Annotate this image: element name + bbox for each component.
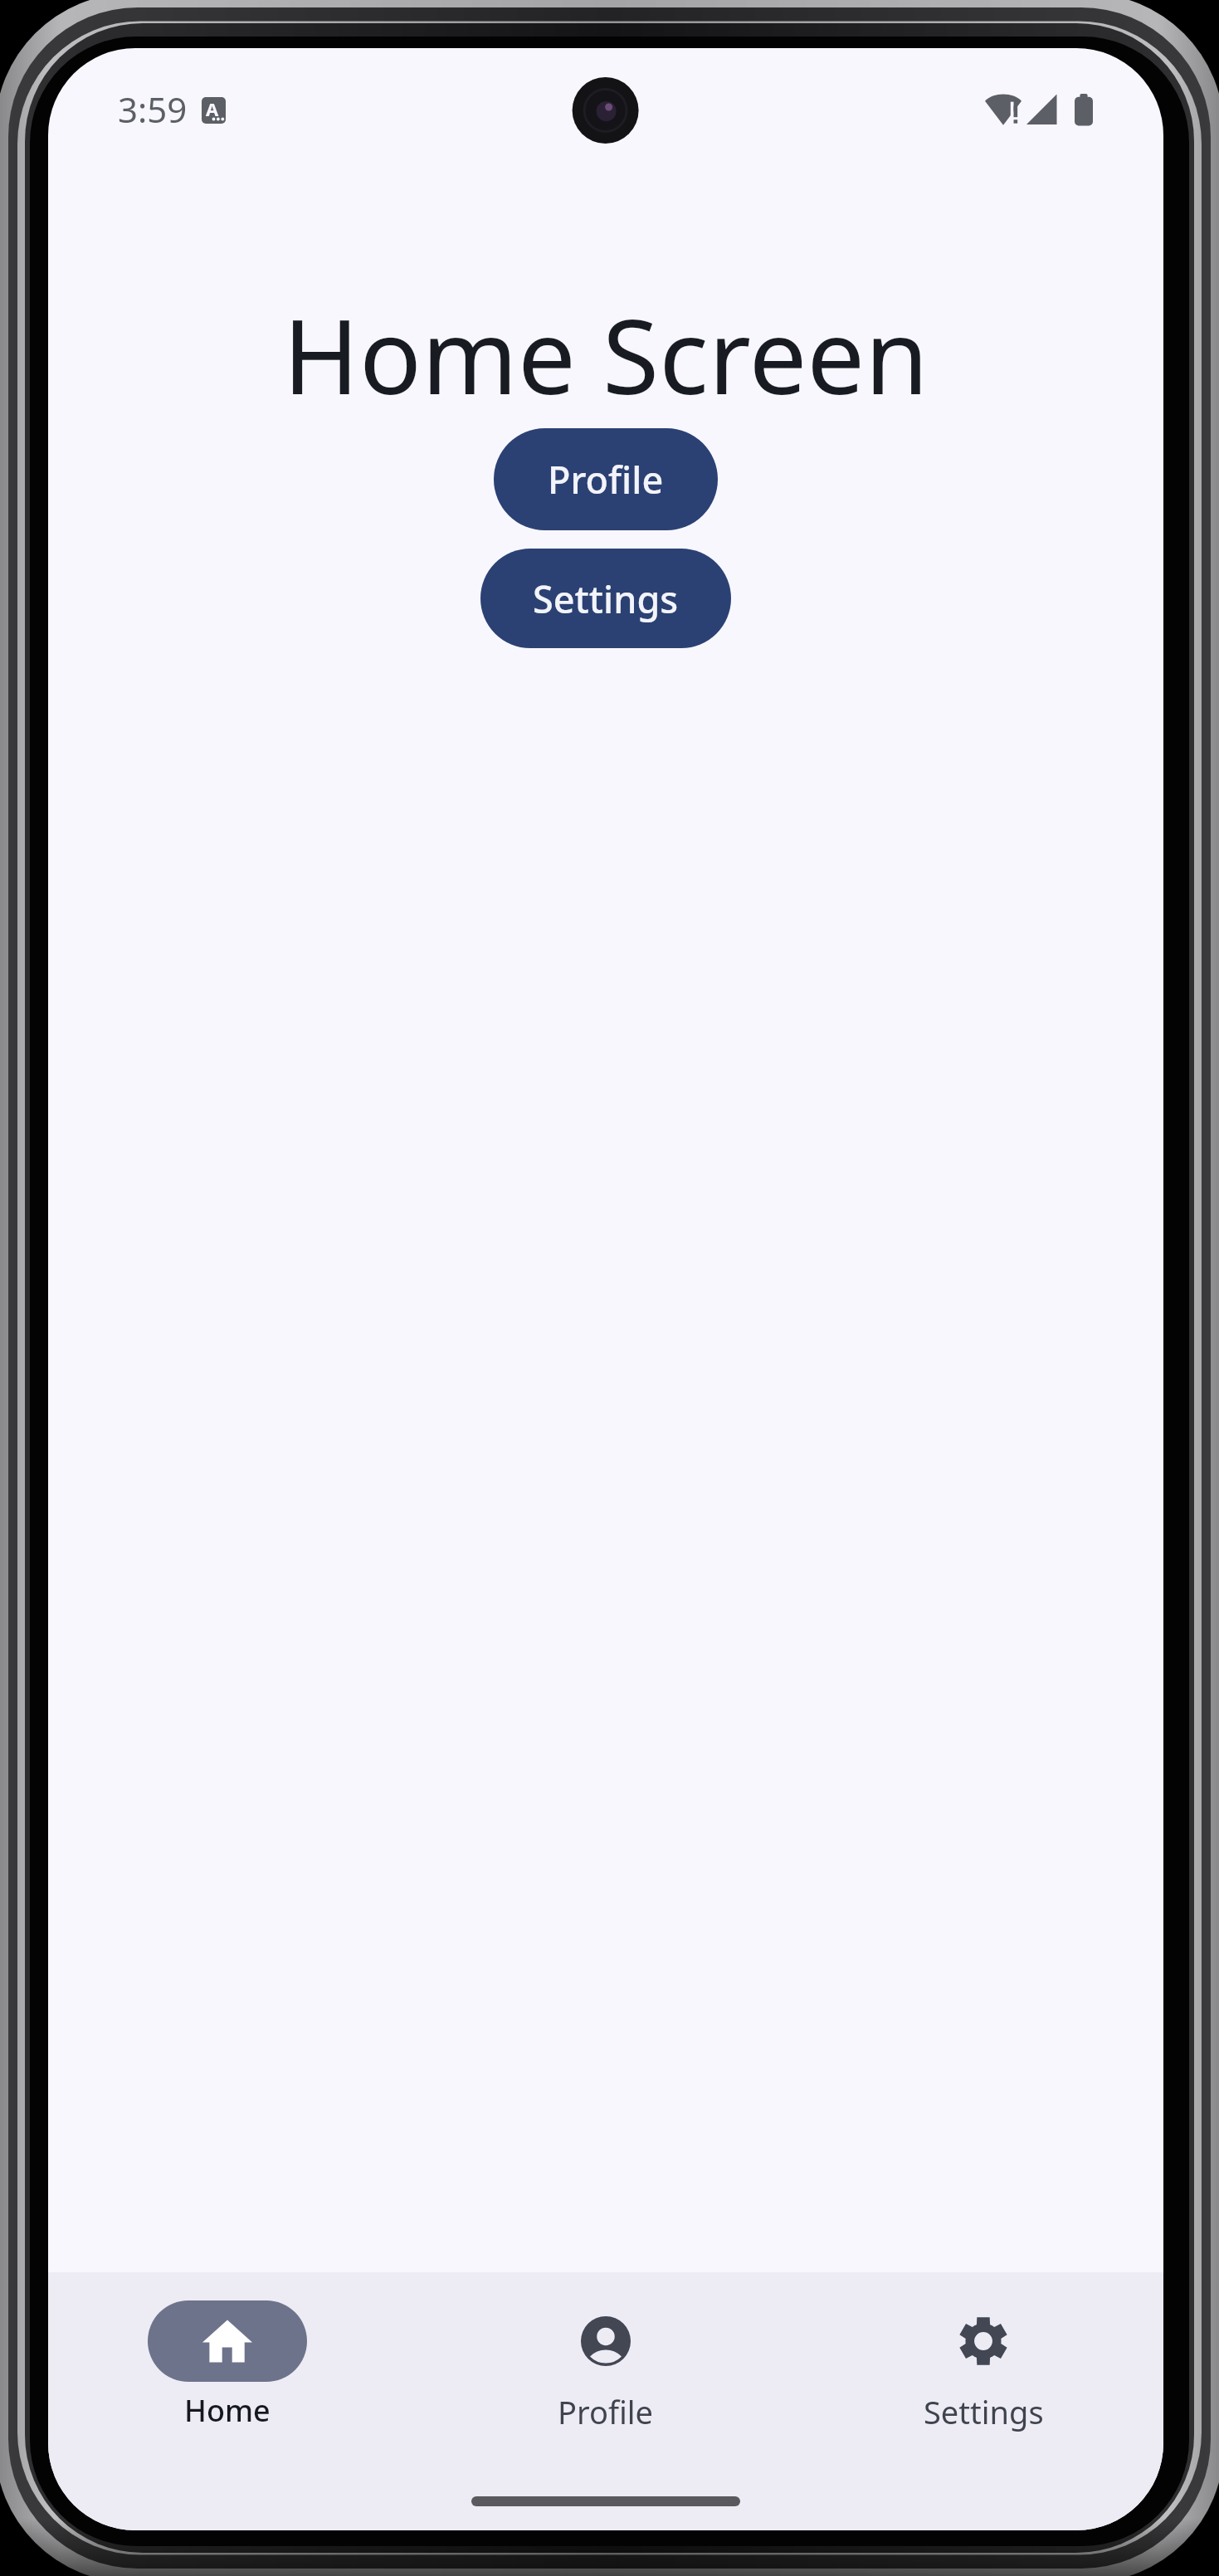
button[interactable]: Profile (481, 2272, 730, 2455)
staticText: Profile (548, 454, 664, 505)
staticText: Home (184, 2390, 271, 2431)
staticText: Settings (924, 2390, 1044, 2433)
staticText: Profile (558, 2390, 654, 2433)
staticText: A (206, 97, 219, 121)
button[interactable]: Settings (859, 2272, 1108, 2455)
staticText: 3:59 (118, 85, 188, 133)
staticText: Home Screen (48, 284, 1163, 424)
button[interactable]: Profile (494, 428, 718, 530)
button[interactable]: Settings (480, 549, 731, 648)
button[interactable]: Home (103, 2272, 352, 2455)
staticText: Settings (533, 573, 679, 624)
